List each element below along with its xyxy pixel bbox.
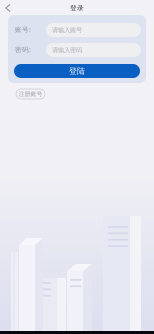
- staticText: 注册账号: [18, 90, 42, 98]
- staticText: 请输入账号: [52, 26, 82, 34]
- staticText: 请输入密码: [52, 46, 82, 54]
- button[interactable]: 注册账号: [16, 89, 45, 99]
- staticText: 登陆: [69, 66, 85, 76]
- staticText: 账号:: [15, 25, 31, 34]
- button[interactable]: Back: [2, 1, 14, 15]
- staticText: 密码:: [15, 45, 31, 54]
- staticText: 登录: [70, 4, 84, 12]
- button[interactable]: 登陆: [14, 64, 140, 78]
